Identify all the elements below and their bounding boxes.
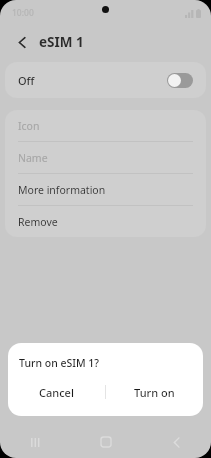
button[interactable]: Back (141, 426, 211, 458)
button[interactable]: Off (5, 62, 206, 98)
staticText: Cancel (39, 385, 74, 400)
button[interactable]: Recents (0, 426, 71, 458)
staticText: More information (18, 183, 106, 197)
button[interactable]: Cancel (8, 379, 105, 405)
staticText: Off (18, 73, 167, 88)
button[interactable]: More information (5, 174, 206, 205)
button[interactable]: Name (5, 142, 206, 173)
staticText: Remove (18, 215, 58, 229)
staticText: Icon (18, 119, 40, 133)
staticText: Turn on eSIM 1? (19, 356, 100, 370)
staticText: Name (18, 151, 48, 165)
button[interactable]: Turn on (106, 379, 203, 405)
button[interactable]: Remove (5, 206, 206, 237)
button[interactable]: Back (12, 32, 32, 52)
button[interactable]: Icon (5, 110, 206, 141)
staticText: Turn on (134, 385, 175, 400)
staticText: eSIM 1 (39, 33, 84, 51)
staticText: 10:00 (12, 7, 34, 19)
